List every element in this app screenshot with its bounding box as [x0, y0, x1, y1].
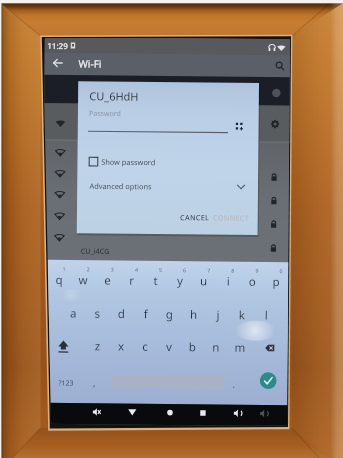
button[interactable]: Framed photo of a tablet showing a Wi-Fi…	[0, 0, 343, 458]
